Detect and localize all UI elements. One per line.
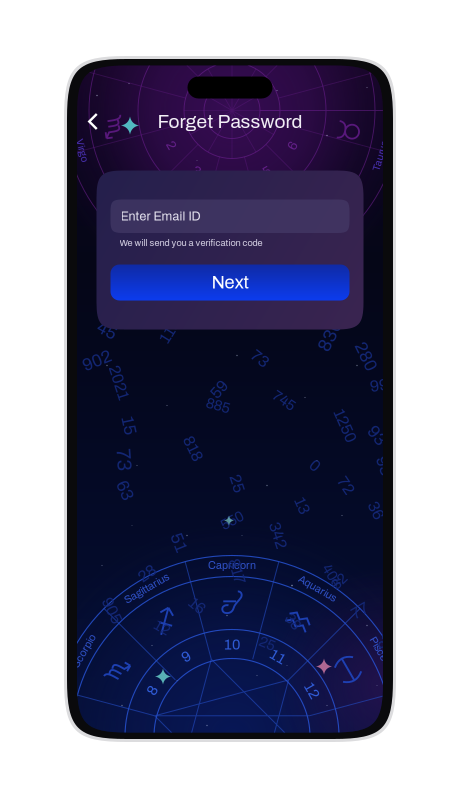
staticText: We will send you a verification code [119, 238, 262, 248]
staticText: 10 [224, 636, 240, 652]
staticText: 280 [351, 347, 381, 366]
staticText: 905 [98, 602, 125, 619]
staticText: 11 [270, 649, 286, 665]
staticText: 2021 [101, 374, 136, 391]
staticText: 28 [138, 565, 156, 582]
staticText: 0 [310, 457, 319, 474]
staticText: 1107 [155, 319, 189, 336]
staticText: Forget Password [157, 111, 302, 132]
staticText: 885 [206, 397, 230, 413]
staticText: 6 [289, 138, 297, 153]
staticText: 25 [259, 635, 275, 651]
button[interactable]: Next [110, 264, 349, 300]
staticText: 404 [320, 567, 344, 583]
staticText: 342 [264, 527, 291, 544]
staticText: 36 [367, 502, 385, 519]
staticText: 8 [148, 682, 156, 698]
staticText: 16 [188, 597, 205, 614]
staticText: Enter Email ID [120, 209, 200, 223]
staticText: 1250 [327, 417, 362, 434]
staticText: Scorpio [65, 645, 102, 657]
staticText: 73 [113, 449, 135, 470]
staticText: 902 [82, 351, 112, 370]
staticText: 12 [154, 619, 170, 635]
staticText: 249 [392, 525, 419, 542]
staticText: 77 [351, 602, 369, 619]
staticText: 830 [313, 325, 346, 346]
staticText: 73 [251, 350, 269, 367]
staticText: 99 [370, 377, 388, 394]
staticText: 45 [97, 321, 117, 340]
staticText: 818 [180, 440, 206, 457]
staticText: 813 [374, 629, 400, 646]
staticText: 25 [228, 475, 246, 492]
staticText: 32 [331, 573, 347, 589]
staticText: 59 [210, 381, 228, 398]
staticText: 93 [367, 426, 387, 445]
staticText: Pisces [365, 645, 396, 657]
staticText: 15 [119, 416, 138, 435]
staticText: 817 [224, 563, 250, 580]
staticText: 5 [263, 164, 271, 178]
button[interactable]: Back [77, 101, 109, 141]
staticText: 9 [182, 649, 190, 665]
staticText: 13 [293, 497, 310, 514]
staticText: Capricorn [208, 560, 256, 571]
staticText: Next [211, 273, 248, 292]
staticText: 2 [167, 138, 175, 153]
staticText: Taurus [365, 150, 396, 161]
staticText: 12 [304, 682, 320, 698]
staticText: 63 [115, 481, 135, 500]
staticText: 38 [285, 613, 301, 629]
staticText: 935 [371, 461, 401, 480]
staticText: Sagittarius [121, 583, 171, 594]
staticText: 3 [193, 164, 201, 178]
staticText: Aquarius [296, 583, 338, 594]
staticText: Virgo [70, 145, 94, 156]
staticText: 745 [272, 392, 296, 408]
staticText: 51 [169, 533, 188, 552]
staticText: 550 [220, 512, 244, 528]
staticText: 72 [337, 477, 355, 494]
